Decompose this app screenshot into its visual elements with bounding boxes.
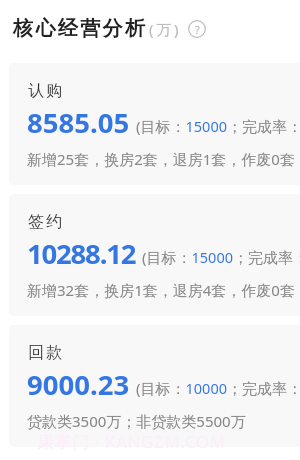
staticText: ? bbox=[195, 22, 200, 37]
staticText: (目标：15000；完成率： bbox=[136, 116, 300, 136]
staticText: 新增25套，换房2套，退房1套，作废0套 bbox=[27, 149, 295, 169]
staticText: 新增32套，换房1套，退房4套，作废0套 bbox=[27, 280, 295, 300]
staticText: 10288.12 bbox=[27, 235, 136, 272]
staticText: 核心经营分析 bbox=[13, 16, 148, 41]
staticText: (目标：10000；完成率： bbox=[136, 378, 300, 398]
staticText: 康掌门 · KANGZM.COM bbox=[37, 430, 226, 453]
staticText: 签约 bbox=[27, 212, 63, 232]
staticText: 9000.23 bbox=[27, 366, 130, 403]
staticText: (目标：15000；完成率： bbox=[142, 247, 300, 267]
button[interactable]: Help bbox=[188, 20, 206, 38]
button[interactable]: 认购 bbox=[9, 63, 300, 185]
button[interactable]: 签约 bbox=[9, 194, 300, 316]
staticText: (万) bbox=[149, 19, 182, 39]
staticText: 8585.05 bbox=[27, 104, 130, 141]
button[interactable]: 回款 bbox=[9, 325, 300, 447]
staticText: 贷款类3500万；非贷款类5500万 bbox=[27, 411, 246, 431]
staticText: 认购 bbox=[27, 81, 63, 101]
staticText: 回款 bbox=[27, 343, 63, 363]
